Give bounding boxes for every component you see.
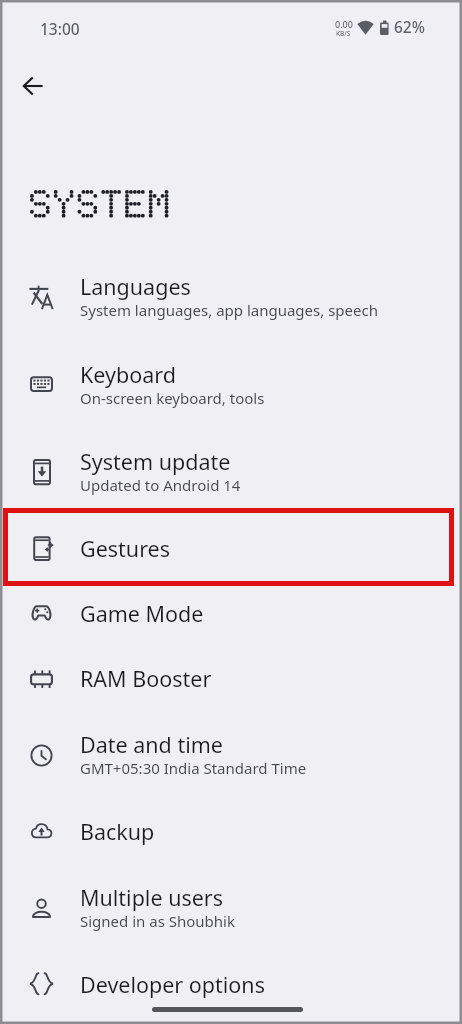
button[interactable]: Back	[9, 62, 57, 110]
staticText: KB/S	[336, 29, 351, 38]
staticText: System update	[80, 447, 231, 476]
button[interactable]: Multiple users	[0, 866, 462, 953]
staticText: System languages, app languages, speech	[80, 300, 378, 320]
staticText: Keyboard	[80, 360, 176, 389]
staticText: Signed in as Shoubhik	[80, 911, 235, 931]
staticText: 13:00	[40, 18, 80, 39]
staticText: Updated to Android 14	[80, 475, 241, 495]
button[interactable]: Game Mode	[0, 581, 462, 646]
button[interactable]: RAM Booster	[0, 646, 462, 711]
button[interactable]: Keyboard	[0, 343, 462, 430]
staticText: Gestures	[80, 534, 170, 563]
button[interactable]: Backup	[0, 798, 462, 864]
staticText: GMT+05:30 India Standard Time	[80, 758, 307, 778]
staticText: 62%	[394, 16, 425, 37]
button[interactable]: Date and time	[0, 713, 462, 800]
button[interactable]: Languages	[0, 255, 462, 342]
button[interactable]: Gestures	[0, 515, 462, 581]
button[interactable]: System update	[0, 430, 462, 517]
button[interactable]: Developer options	[0, 951, 462, 1017]
staticText: 0.00	[335, 18, 353, 30]
staticText: Backup	[80, 817, 155, 846]
staticText: RAM Booster	[80, 664, 212, 693]
staticText: Game Mode	[80, 599, 204, 628]
staticText: On-screen keyboard, tools	[80, 388, 265, 408]
staticText: Multiple users	[80, 883, 224, 912]
staticText: Languages	[80, 272, 191, 301]
staticText: Developer options	[80, 970, 265, 999]
staticText: Date and time	[80, 730, 223, 759]
